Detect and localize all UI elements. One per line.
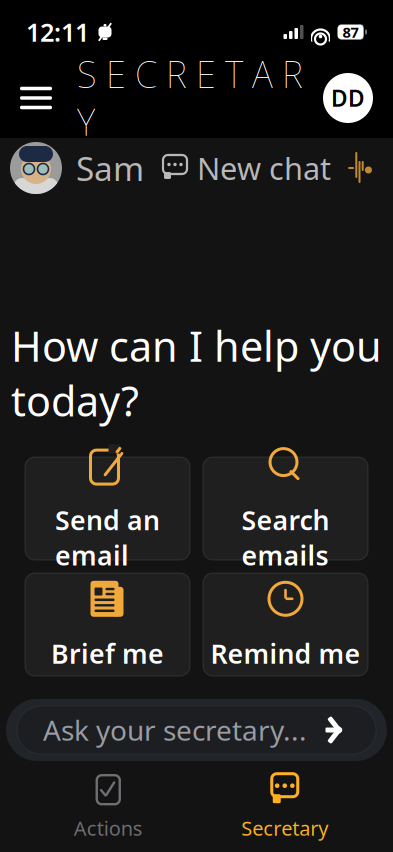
staticText: Sam — [76, 146, 144, 190]
staticText: 87 — [342, 22, 358, 42]
staticText: How can I help you today? — [11, 318, 382, 428]
staticText: Search emails — [241, 502, 329, 573]
staticText: Brief me — [51, 636, 164, 671]
staticText: Remind me — [210, 636, 360, 671]
staticText: Ask your secretary... — [43, 711, 307, 749]
button[interactable]: Sam — [10, 136, 144, 200]
button[interactable]: Ask your secretary... — [17, 706, 376, 754]
button[interactable]: Account DD — [323, 73, 373, 123]
button[interactable]: Activity — [331, 147, 375, 189]
button[interactable]: Menu — [9, 74, 63, 122]
staticText: DD — [331, 83, 365, 113]
staticText: 12:11 — [26, 15, 89, 49]
staticText: Send an email — [55, 502, 160, 573]
button[interactable]: Actions — [20, 767, 196, 847]
staticText: New chat — [197, 148, 331, 188]
button[interactable]: Brief me — [25, 573, 190, 676]
button[interactable]: Send an email — [25, 457, 190, 560]
staticText: Actions — [74, 815, 143, 841]
button[interactable]: Search emails — [203, 457, 368, 560]
button[interactable]: Secretary — [196, 767, 373, 847]
button[interactable]: New chat — [162, 142, 331, 194]
staticText: S E C R E T A R Y — [77, 50, 303, 146]
button[interactable]: Remind me — [203, 573, 368, 676]
staticText: Secretary — [241, 815, 328, 841]
